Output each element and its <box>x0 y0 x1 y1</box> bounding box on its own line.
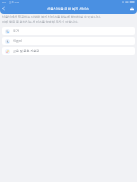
staticText: 교육 및 문화 지원금 <box>13 49 40 53</box>
button[interactable]: 교육 및 문화 지원금 <box>2 47 135 55</box>
button[interactable]: Back <box>0 5 7 12</box>
staticText: 아래 항목 중 원하시는 서비스를 선택해 주시기 바랍니다. <box>2 20 79 24</box>
button[interactable]: 주거 <box>2 27 135 35</box>
staticText: 오후 4:32 <box>9 0 20 3</box>
staticText: SKT <box>2 0 7 3</box>
button[interactable]: Shopping bag <box>129 6 135 12</box>
button[interactable]: 의료비 <box>2 37 135 45</box>
staticText: 서울시민을 위한 복지 서비스 <box>47 6 90 11</box>
staticText: 서울시에서 제공하는 다양한 복지 서비스를 한눈에 확인하실 수 있습니다. <box>2 15 101 19</box>
staticText: 주거 <box>13 29 19 33</box>
staticText: 의료비 <box>13 39 22 43</box>
